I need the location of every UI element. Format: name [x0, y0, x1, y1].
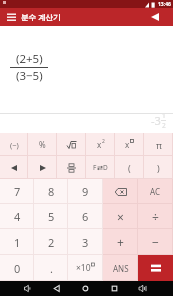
staticText: 4 [14, 209, 21, 224]
staticText: ANS [113, 263, 129, 274]
staticText: 2 [48, 235, 55, 250]
staticText: . [50, 261, 53, 276]
staticText: ( [128, 162, 131, 174]
staticText: % [39, 139, 46, 150]
staticText: D [103, 163, 108, 172]
staticText: 6 [82, 209, 89, 224]
staticText: 7 [14, 184, 21, 199]
staticText: 1 [162, 111, 166, 120]
staticText: − [152, 234, 159, 250]
staticText: 2 [102, 138, 105, 145]
staticText: -3 [151, 113, 161, 128]
staticText: 2 [162, 121, 166, 130]
staticText: x [125, 139, 130, 150]
staticText: ÷ [152, 209, 159, 225]
staticText: 1 [14, 235, 21, 250]
staticText: 9 [82, 184, 89, 199]
staticText: 5 [48, 209, 55, 224]
staticText: + [117, 234, 124, 250]
staticText: ×10 [76, 262, 91, 274]
staticText: 8 [48, 184, 55, 199]
staticText: F [93, 163, 97, 172]
staticText: 3 [82, 235, 89, 250]
staticText: 분수 계산기 [21, 12, 61, 22]
staticText: 13:46 [158, 1, 171, 8]
staticText: (3−5) [16, 68, 43, 84]
staticText: (2+5) [16, 51, 43, 67]
staticText: ) [157, 162, 160, 174]
staticText: x [97, 139, 102, 150]
staticText: π [156, 139, 162, 151]
staticText: AC [150, 186, 161, 197]
staticText: 0 [14, 261, 21, 276]
staticText: (−) [10, 140, 19, 150]
staticText: × [117, 209, 124, 225]
